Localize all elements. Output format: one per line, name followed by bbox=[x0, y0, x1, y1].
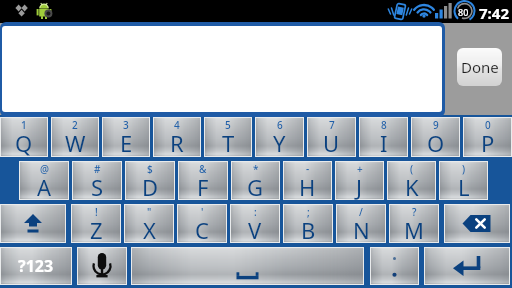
staticText: ( bbox=[410, 162, 414, 176]
button[interactable]: ( bbox=[387, 161, 436, 200]
staticText: ?123 bbox=[18, 255, 54, 277]
staticText: " bbox=[147, 205, 152, 219]
staticText: X bbox=[143, 215, 156, 245]
button[interactable]: 9 bbox=[411, 117, 460, 157]
button[interactable]: Period bbox=[370, 247, 419, 285]
staticText: 80 bbox=[458, 6, 469, 18]
staticText: 4 bbox=[174, 118, 180, 132]
button[interactable]: 3 bbox=[102, 117, 150, 157]
button[interactable]: 0 bbox=[463, 117, 512, 157]
staticText: 0 bbox=[485, 118, 491, 132]
staticText: ? bbox=[412, 205, 417, 219]
staticText: T bbox=[222, 128, 235, 158]
button[interactable]: 8 bbox=[359, 117, 408, 157]
staticText: I bbox=[380, 128, 388, 158]
staticText: 7:42 bbox=[479, 3, 509, 23]
button[interactable]: # bbox=[72, 161, 122, 200]
button[interactable]: @ bbox=[19, 161, 69, 200]
staticText: : bbox=[254, 205, 257, 219]
staticText: $ bbox=[147, 162, 153, 176]
button[interactable]: Voice input bbox=[77, 247, 127, 285]
staticText: 8 bbox=[381, 118, 387, 132]
staticText: F bbox=[197, 172, 209, 202]
staticText: 3 bbox=[123, 118, 129, 132]
staticText: B bbox=[301, 215, 316, 245]
button[interactable]: + bbox=[335, 161, 384, 200]
button[interactable]: 2 bbox=[51, 117, 99, 157]
staticText: - bbox=[306, 162, 310, 176]
staticText: P bbox=[481, 128, 495, 158]
button[interactable]: Space bbox=[131, 247, 364, 285]
button[interactable]: Symbols bbox=[0, 247, 72, 285]
button[interactable]: & bbox=[178, 161, 228, 200]
staticText: D bbox=[142, 172, 159, 202]
button[interactable]: * bbox=[231, 161, 280, 200]
button[interactable]: - bbox=[283, 161, 332, 200]
staticText: A bbox=[37, 172, 52, 202]
staticText: Y bbox=[273, 128, 286, 158]
button[interactable]: Backspace bbox=[444, 204, 510, 243]
staticText: ; bbox=[307, 205, 310, 219]
button[interactable]: ? bbox=[389, 204, 439, 243]
staticText: 1 bbox=[21, 118, 27, 132]
staticText: K bbox=[405, 172, 419, 202]
button[interactable]: 1 bbox=[0, 117, 48, 157]
staticText: U bbox=[323, 128, 340, 158]
staticText: / bbox=[359, 205, 363, 219]
staticText: * bbox=[253, 162, 259, 176]
staticText: & bbox=[199, 162, 207, 176]
button[interactable]: $ bbox=[125, 161, 175, 200]
staticText: 7 bbox=[329, 118, 335, 132]
button[interactable]: 6 bbox=[255, 117, 304, 157]
button[interactable]: Done bbox=[457, 48, 502, 86]
staticText: V bbox=[248, 215, 262, 245]
staticText: 6 bbox=[277, 118, 283, 132]
button[interactable]: " bbox=[124, 204, 174, 243]
button[interactable]: : bbox=[230, 204, 280, 243]
staticText: @ bbox=[40, 162, 49, 176]
button[interactable]: ! bbox=[71, 204, 121, 243]
button[interactable]: Shift bbox=[0, 204, 66, 243]
button[interactable]: ) bbox=[439, 161, 488, 200]
staticText: 2 bbox=[72, 118, 78, 132]
staticText: Q bbox=[15, 128, 33, 158]
staticText: Done bbox=[461, 57, 499, 77]
staticText: G bbox=[247, 172, 264, 202]
button[interactable]: ' bbox=[177, 204, 227, 243]
button[interactable]: 7 bbox=[307, 117, 356, 157]
staticText: M bbox=[404, 215, 424, 245]
staticText: C bbox=[195, 215, 209, 245]
button[interactable]: ; bbox=[283, 204, 333, 243]
staticText: 5 bbox=[225, 118, 231, 132]
staticText: E bbox=[120, 128, 133, 158]
button[interactable]: 5 bbox=[204, 117, 252, 157]
staticText: ) bbox=[462, 162, 466, 176]
staticText: + bbox=[357, 162, 363, 176]
staticText: Z bbox=[90, 215, 103, 245]
staticText: J bbox=[356, 172, 363, 202]
staticText: N bbox=[353, 215, 370, 245]
staticText: R bbox=[170, 128, 184, 158]
staticText: ' bbox=[201, 205, 204, 219]
button[interactable]: 4 bbox=[153, 117, 201, 157]
staticText: 9 bbox=[433, 118, 439, 132]
staticText: L bbox=[458, 172, 470, 202]
staticText: S bbox=[91, 172, 104, 202]
button[interactable]: / bbox=[336, 204, 386, 243]
staticText: O bbox=[427, 128, 445, 158]
button[interactable]: Enter bbox=[424, 247, 510, 285]
staticText: H bbox=[299, 172, 316, 202]
staticText: W bbox=[65, 128, 86, 158]
staticText: # bbox=[94, 162, 101, 176]
staticText: ! bbox=[95, 205, 98, 219]
